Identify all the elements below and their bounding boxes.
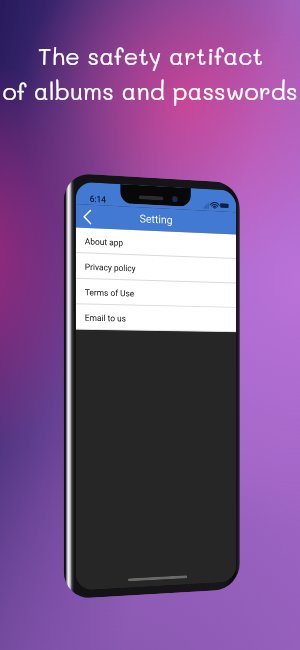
staticText: 6:14 [90,194,106,205]
staticText: Email to us [85,313,126,323]
staticText: About app [85,236,123,248]
button[interactable]: Email to us [76,304,236,332]
staticText: of albums and passwords [2,75,298,106]
staticText: Privacy policy [85,262,136,273]
staticText: Setting [140,212,173,227]
button[interactable]: Privacy policy [76,253,236,283]
staticText: Terms of Use [85,287,135,298]
button[interactable]: Terms of Use [76,279,236,308]
staticText: The safety artifact [38,40,263,71]
button[interactable]: Back [76,204,99,229]
button[interactable]: About app [76,228,236,259]
